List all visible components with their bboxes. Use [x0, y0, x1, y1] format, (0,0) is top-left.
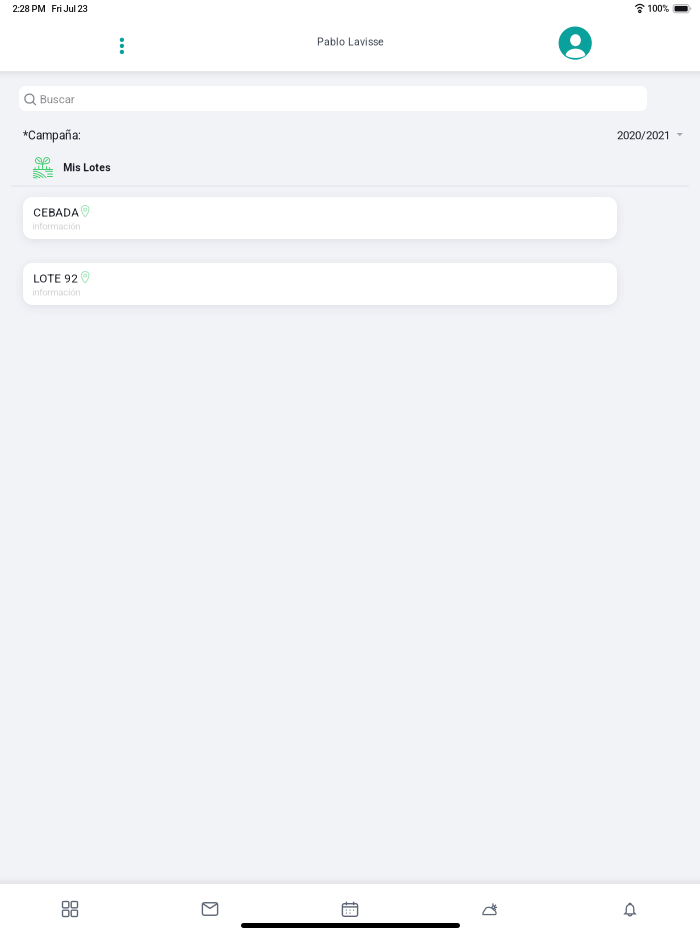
- button[interactable]: Messages: [140, 884, 280, 934]
- staticText: Fri Jul 23: [51, 3, 87, 14]
- staticText: Buscar: [40, 93, 75, 106]
- button[interactable]: Calendar: [280, 884, 420, 934]
- button[interactable]: CEBADA: [23, 197, 617, 239]
- button[interactable]: 2020/2021: [617, 126, 685, 146]
- staticText: 100%: [647, 3, 669, 14]
- button[interactable]: Buscar: [19, 86, 647, 111]
- button[interactable]: Account: [559, 27, 592, 60]
- staticText: Pablo Lavisse: [317, 36, 384, 48]
- staticText: información: [32, 287, 80, 298]
- staticText: LOTE 92: [33, 272, 78, 285]
- button[interactable]: Weather: [420, 884, 560, 934]
- staticText: CEBADA: [33, 206, 79, 219]
- button[interactable]: Dashboard: [0, 884, 140, 934]
- staticText: *Campaña:: [23, 129, 81, 142]
- staticText: 2020/2021: [617, 129, 670, 142]
- staticText: información: [32, 221, 80, 232]
- staticText: Mis Lotes: [63, 162, 110, 174]
- staticText: 2:28 PM: [12, 3, 45, 14]
- button[interactable]: Notifications: [560, 884, 700, 934]
- button[interactable]: LOTE 92: [23, 263, 617, 305]
- button[interactable]: More options: [102, 24, 142, 68]
